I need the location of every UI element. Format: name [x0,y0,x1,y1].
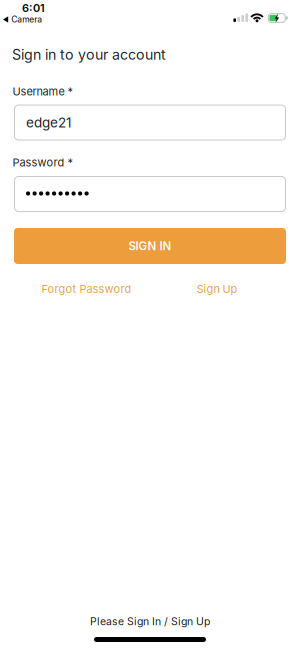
button[interactable]: Forgot Password [41,282,131,296]
staticText: Sign in to your account [12,46,166,63]
button[interactable]: Username text field [14,104,286,140]
button[interactable]: SIGN IN [14,228,286,264]
staticText: Please Sign In / Sign Up [90,615,210,628]
button[interactable]: Back to Camera [3,14,93,25]
staticText: SIGN IN [128,239,171,253]
staticText: edge21 [26,114,71,131]
staticText: 6:01 [22,1,45,15]
staticText: Forgot Password [41,282,131,296]
staticText: Password * [12,156,73,169]
button[interactable]: Sign Up [196,282,237,296]
button[interactable]: Password secure text field [14,176,286,212]
staticText: Camera [11,14,42,25]
staticText: Sign Up [196,282,237,296]
staticText: Username * [12,85,73,98]
